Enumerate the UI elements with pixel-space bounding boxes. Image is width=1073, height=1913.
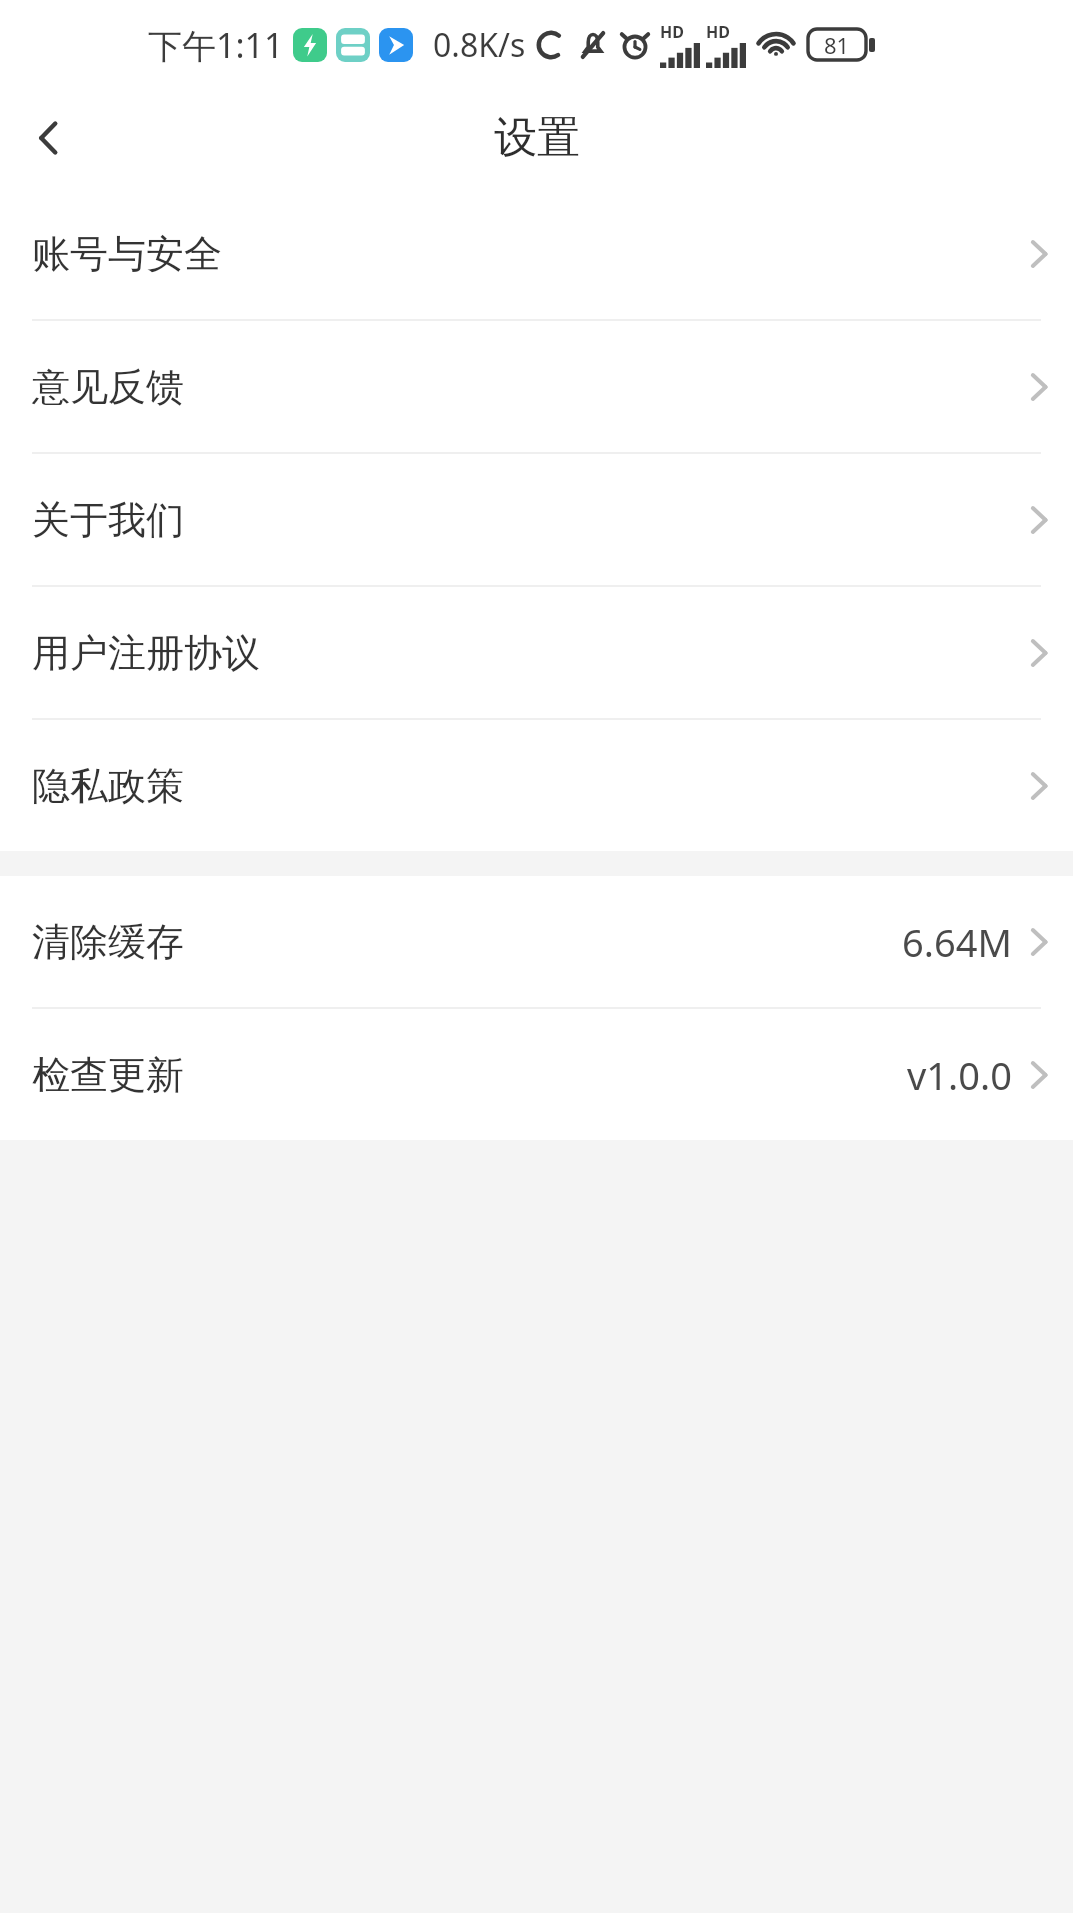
button[interactable]: 账号与安全: [0, 188, 1073, 319]
staticText: 6.64M: [902, 916, 1012, 968]
staticText: 隐私政策: [32, 762, 184, 810]
staticText: 用户注册协议: [32, 629, 260, 677]
staticText: HD: [706, 21, 730, 43]
staticText: 账号与安全: [32, 230, 222, 278]
button[interactable]: 隐私政策: [0, 720, 1073, 851]
staticText: 清除缓存: [32, 918, 184, 966]
staticText: 关于我们: [32, 496, 184, 544]
button[interactable]: Back: [0, 88, 100, 188]
button[interactable]: 用户注册协议: [0, 587, 1073, 718]
button[interactable]: 意见反馈: [0, 321, 1073, 452]
staticText: HD: [660, 21, 684, 43]
staticText: 设置: [494, 111, 580, 165]
button[interactable]: 关于我们: [0, 454, 1073, 585]
staticText: 81: [824, 30, 850, 60]
staticText: 检查更新: [32, 1051, 184, 1099]
staticText: v1.0.0: [907, 1049, 1012, 1101]
staticText: 意见反馈: [32, 363, 184, 411]
button[interactable]: 检查更新: [0, 1009, 1073, 1140]
button[interactable]: 清除缓存: [0, 876, 1073, 1007]
staticText: 0.8K/s: [433, 23, 526, 67]
staticText: 下午1:11: [148, 22, 284, 68]
